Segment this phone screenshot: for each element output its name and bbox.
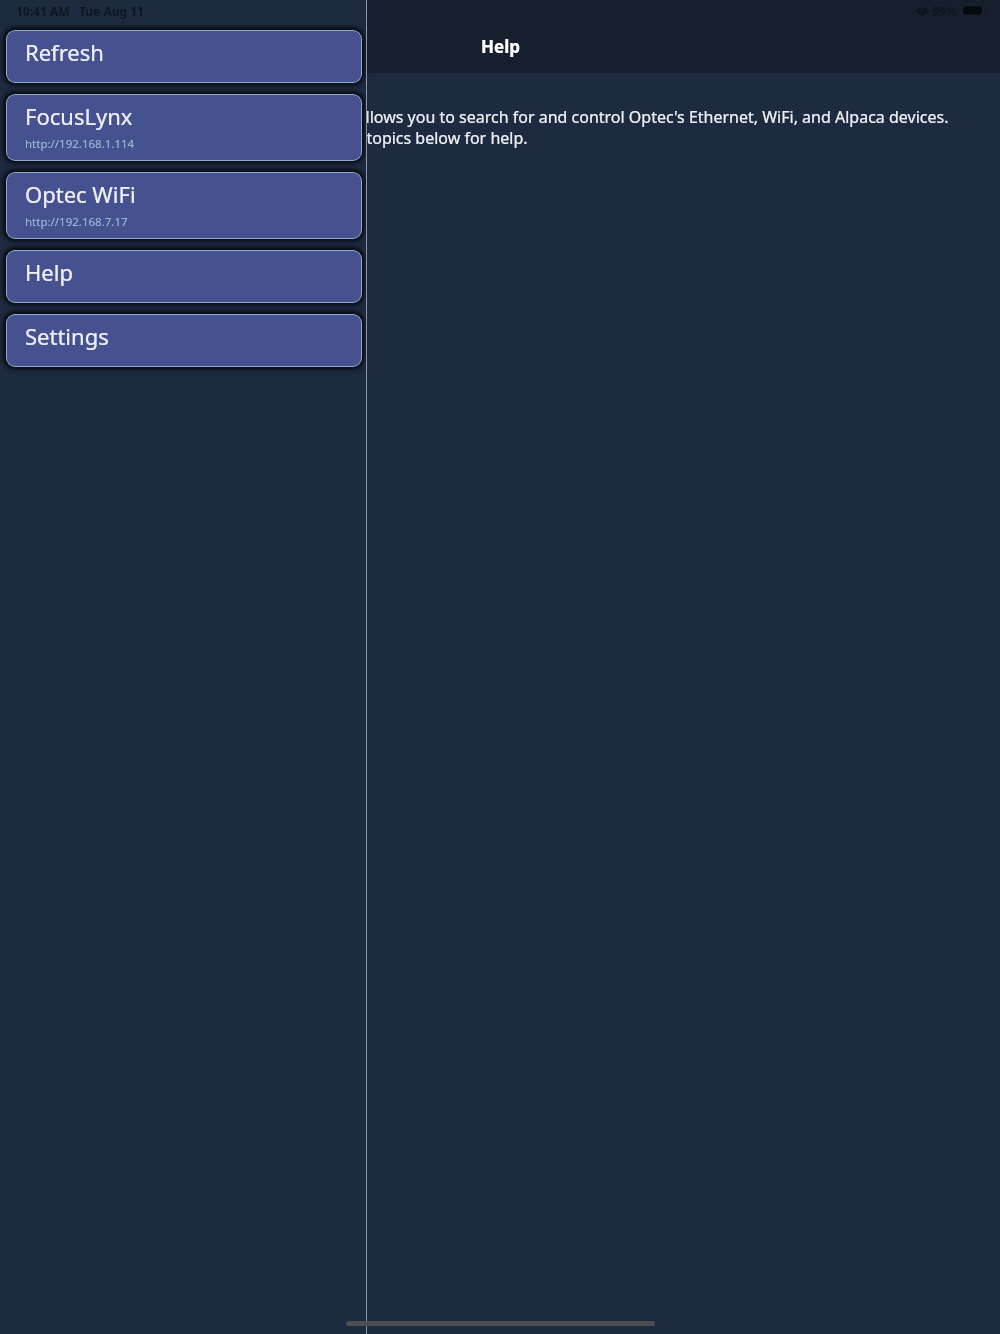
- staticText: Settings: [25, 321, 109, 351]
- staticText: http://192.168.7.17: [25, 214, 128, 230]
- staticText: 10:41 AM: [16, 3, 70, 19]
- staticText: 99%: [932, 3, 957, 19]
- button[interactable]: FocusLynx: [6, 94, 362, 161]
- staticText: Optec WiFi: [25, 179, 136, 209]
- button[interactable]: Optec WiFi: [6, 172, 362, 239]
- other: Battery: [961, 4, 986, 17]
- button[interactable]: Help: [6, 250, 362, 303]
- staticText: Help: [481, 35, 520, 58]
- button[interactable]: Settings: [6, 314, 362, 367]
- staticText: Help: [25, 257, 73, 287]
- other: Wi-Fi: [915, 6, 930, 16]
- staticText: Tue Aug 11: [79, 3, 144, 19]
- staticText: Refresh: [25, 37, 104, 67]
- staticText: http://192.168.1.114: [25, 136, 135, 152]
- staticText: This app allows you to search for and co…: [289, 106, 949, 149]
- staticText: FocusLynx: [25, 101, 133, 131]
- button[interactable]: Refresh: [6, 30, 362, 83]
